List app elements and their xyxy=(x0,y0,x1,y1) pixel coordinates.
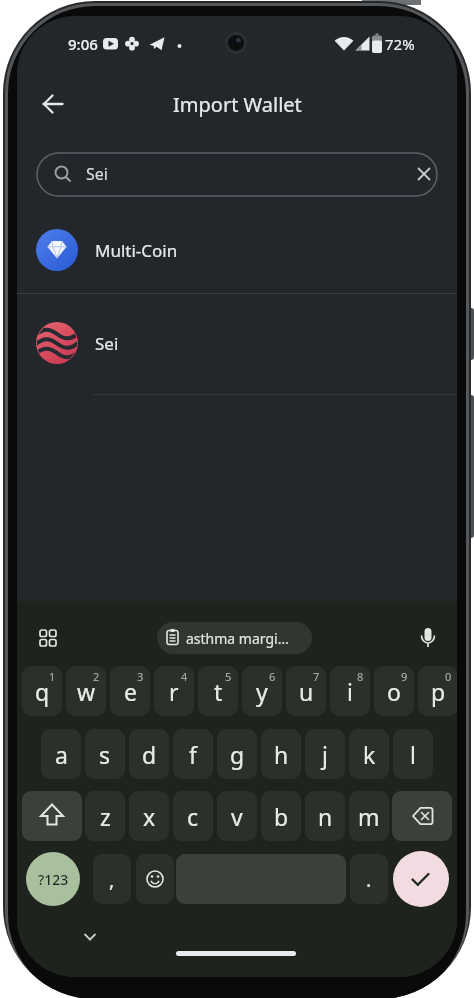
button[interactable] xyxy=(33,623,63,653)
staticText: j xyxy=(322,739,328,770)
button[interactable]: a xyxy=(41,729,81,779)
button[interactable] xyxy=(136,854,174,904)
staticText: 3 xyxy=(137,669,144,684)
staticText: d xyxy=(142,739,157,770)
staticText: 72% xyxy=(385,34,415,54)
button[interactable] xyxy=(413,623,443,653)
staticText: p xyxy=(431,676,446,707)
staticText: 9:06 xyxy=(68,34,98,54)
staticText: 7 xyxy=(313,669,320,684)
staticText: . xyxy=(366,866,372,893)
staticText: m xyxy=(358,801,380,832)
staticText: 5 xyxy=(225,669,232,684)
staticText: 0 xyxy=(445,669,452,684)
button[interactable] xyxy=(393,851,449,907)
staticText: k xyxy=(363,739,376,770)
staticText: 4 xyxy=(181,669,188,684)
staticText: b xyxy=(274,801,289,832)
staticText: 6 xyxy=(269,669,276,684)
button[interactable]: r xyxy=(154,666,194,716)
staticText: z xyxy=(100,801,111,832)
staticText: ?123 xyxy=(38,870,69,889)
staticText: u xyxy=(299,676,314,707)
button[interactable] xyxy=(392,791,452,841)
button[interactable]: q xyxy=(22,666,62,716)
button[interactable]: g xyxy=(217,729,257,779)
button[interactable] xyxy=(22,791,82,841)
staticText: 8 xyxy=(357,669,364,684)
button[interactable]: x xyxy=(129,791,169,841)
button[interactable]: . xyxy=(350,854,388,904)
button[interactable]: u xyxy=(286,666,326,716)
button[interactable]: v xyxy=(217,791,257,841)
staticText: w xyxy=(77,676,96,707)
button[interactable]: m xyxy=(349,791,389,841)
staticText: e xyxy=(124,676,137,707)
button[interactable]: t xyxy=(198,666,238,716)
staticText: Sei xyxy=(86,163,108,185)
button[interactable]: c xyxy=(173,791,213,841)
staticText: q xyxy=(35,676,50,707)
staticText: s xyxy=(99,739,111,770)
button[interactable]: d xyxy=(129,729,169,779)
staticText: y xyxy=(256,676,268,707)
staticText: Multi-Coin xyxy=(95,239,178,262)
staticText: r xyxy=(169,676,179,707)
staticText: t xyxy=(214,676,223,707)
staticText: l xyxy=(410,739,416,770)
button[interactable] xyxy=(17,294,457,394)
staticText: i xyxy=(347,676,353,707)
button[interactable]: h xyxy=(261,729,301,779)
button[interactable]: l xyxy=(393,729,433,779)
button[interactable]: k xyxy=(349,729,389,779)
button[interactable]: o xyxy=(374,666,414,716)
button[interactable]: y xyxy=(242,666,282,716)
button[interactable]: ?123 xyxy=(26,852,80,906)
button[interactable]: s xyxy=(85,729,125,779)
button[interactable] xyxy=(32,84,72,124)
staticText: Import Wallet xyxy=(173,91,302,118)
staticText: 9 xyxy=(401,669,408,684)
button[interactable] xyxy=(37,153,437,196)
staticText: h xyxy=(274,739,289,770)
button[interactable]: j xyxy=(305,729,345,779)
button[interactable]: i xyxy=(330,666,370,716)
button[interactable]: z xyxy=(85,791,125,841)
staticText: g xyxy=(230,739,245,770)
staticText: c xyxy=(187,801,199,832)
button[interactable]: , xyxy=(93,854,131,904)
staticText: x xyxy=(143,801,156,832)
staticText: asthma margi… xyxy=(186,629,289,648)
staticText: 2 xyxy=(93,669,100,684)
staticText: o xyxy=(387,676,401,707)
staticText: v xyxy=(231,801,243,832)
button[interactable] xyxy=(17,205,457,293)
staticText: n xyxy=(318,801,333,832)
button[interactable]: n xyxy=(305,791,345,841)
button[interactable]: b xyxy=(261,791,301,841)
button[interactable]: w xyxy=(66,666,106,716)
button[interactable]: e xyxy=(110,666,150,716)
button[interactable]: f xyxy=(173,729,213,779)
staticText: , xyxy=(109,866,115,893)
button[interactable]: asthma margi… xyxy=(157,622,312,654)
staticText: 1 xyxy=(49,669,56,684)
button[interactable]: p xyxy=(418,666,457,716)
staticText: a xyxy=(55,739,68,770)
staticText: f xyxy=(189,739,197,770)
staticText: Sei xyxy=(95,332,119,355)
